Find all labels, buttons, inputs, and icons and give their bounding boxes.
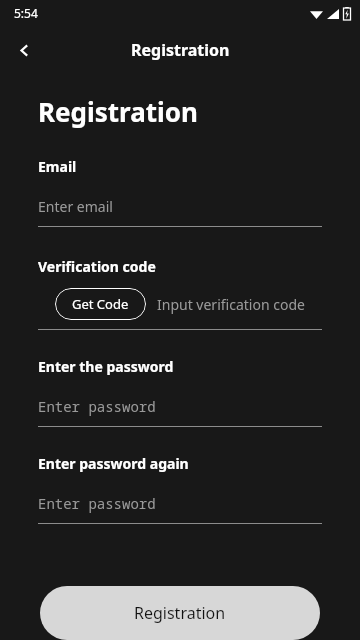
button[interactable]: Back: [0, 26, 48, 74]
staticText: Verification code: [38, 257, 156, 276]
staticText: Registration: [131, 39, 230, 61]
staticText: Registration: [38, 94, 199, 129]
button[interactable]: Registration: [40, 586, 320, 640]
staticText: Registration: [134, 602, 226, 624]
staticText: 5:54: [14, 5, 38, 21]
staticText: Enter password again: [38, 454, 189, 473]
staticText: Enter the password: [38, 357, 174, 376]
staticText: Enter email: [38, 197, 113, 216]
staticText: Get Code: [72, 295, 129, 313]
staticText: Enter password: [38, 397, 156, 416]
staticText: Input verification code: [157, 295, 305, 314]
staticText: Enter password: [38, 494, 156, 513]
button[interactable]: Get Code: [55, 288, 146, 320]
staticText: Email: [38, 157, 77, 176]
